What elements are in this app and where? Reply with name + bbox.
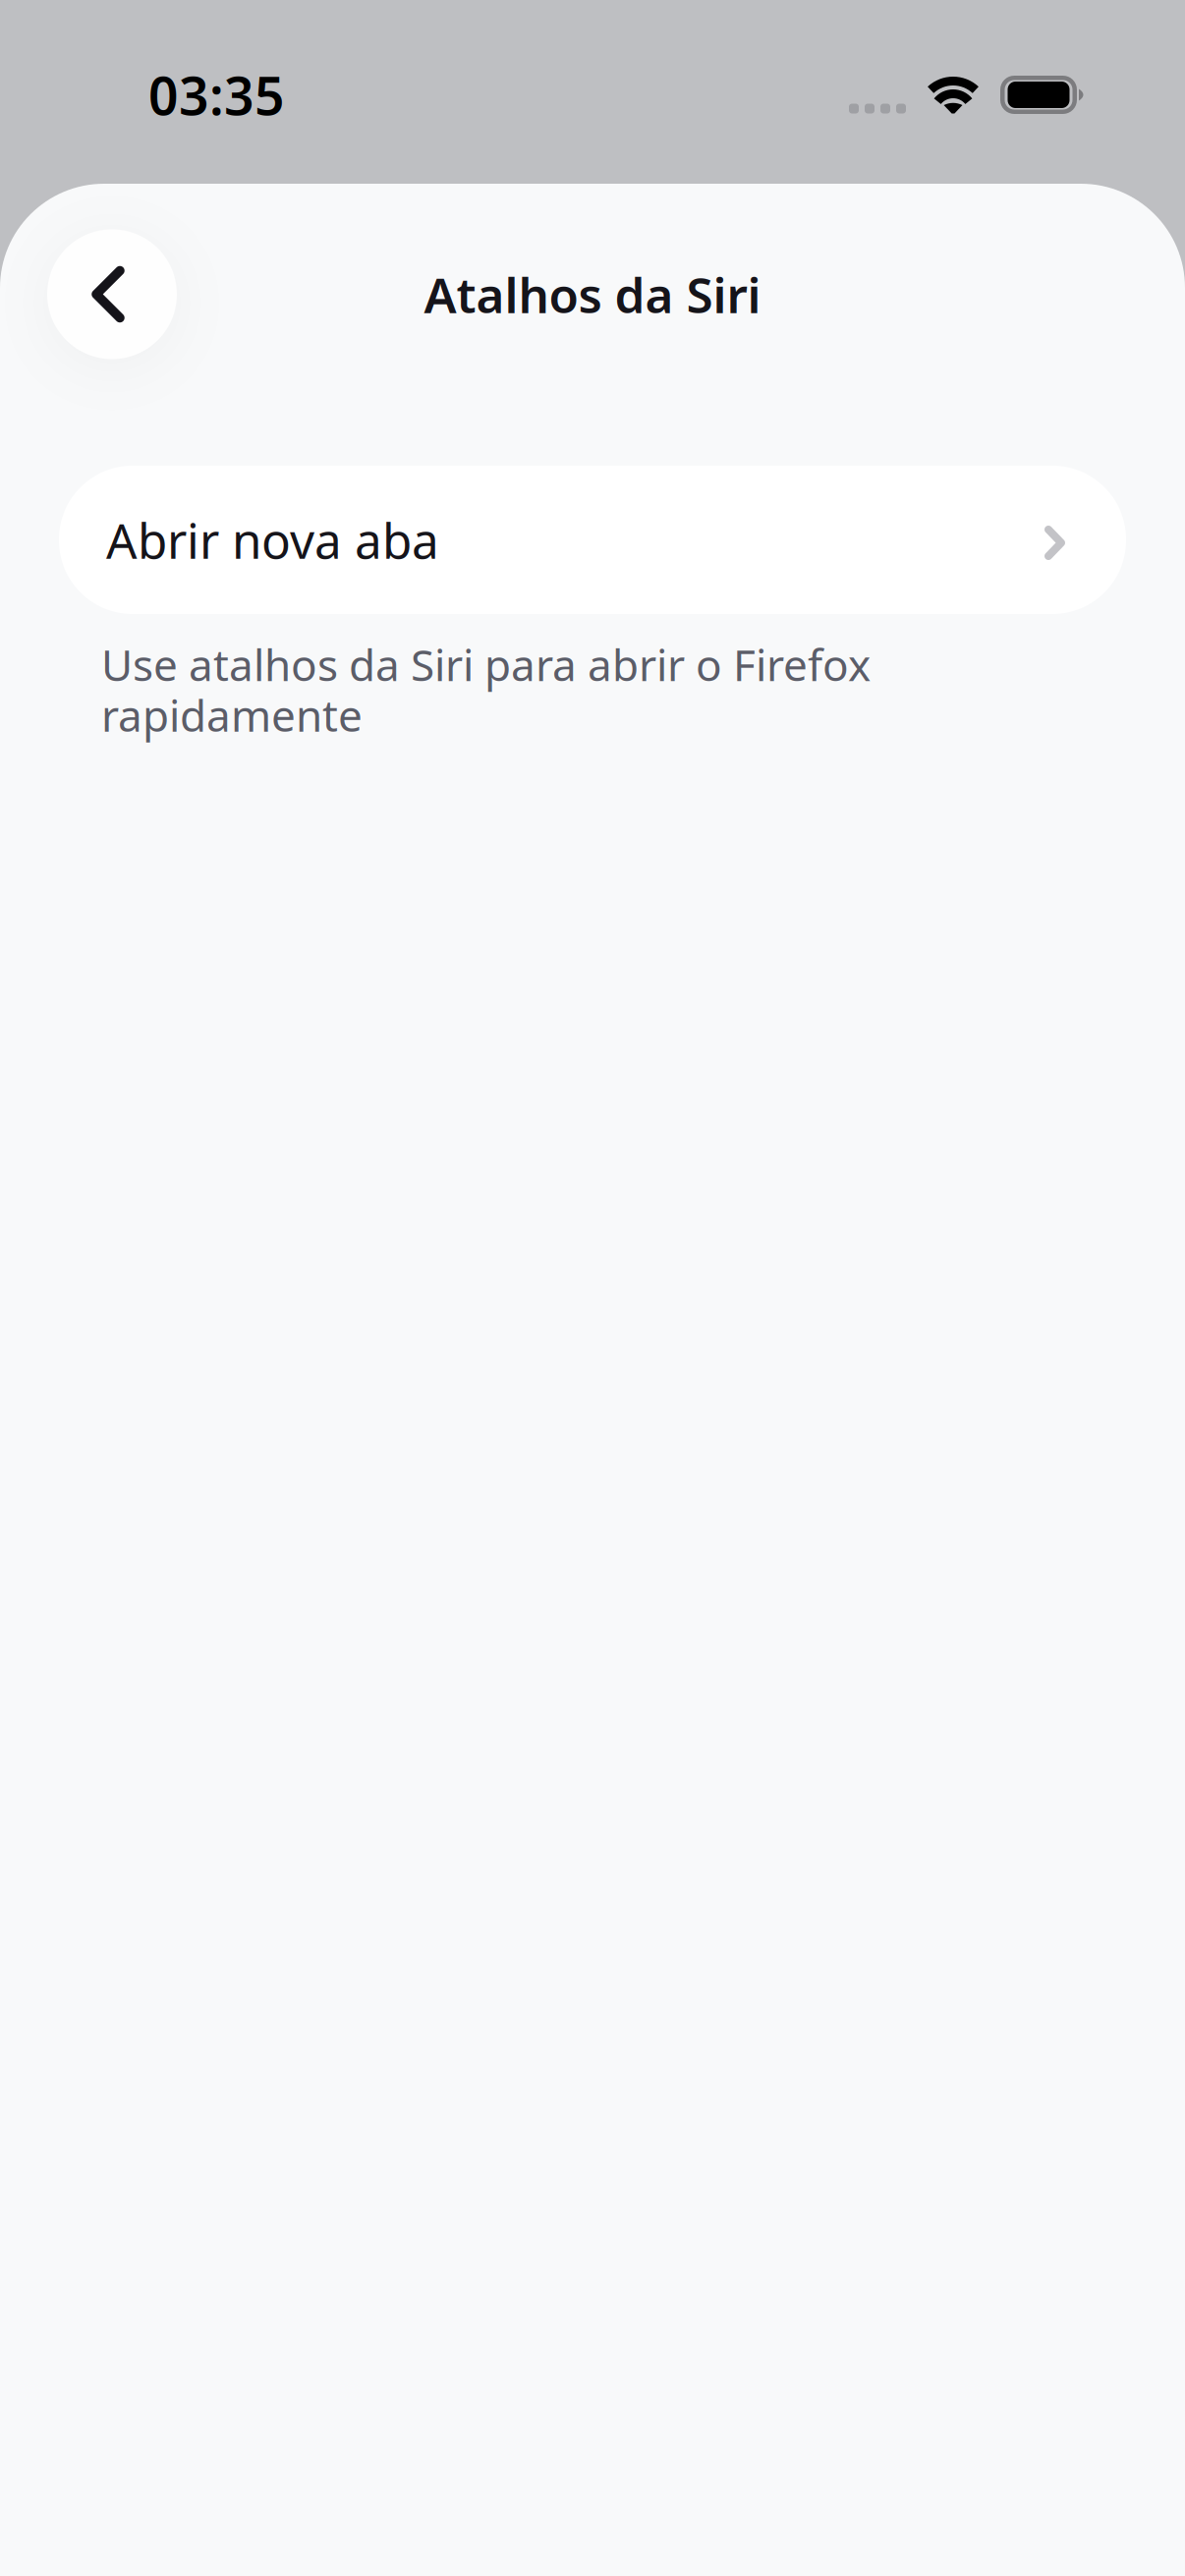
button[interactable]: Voltar xyxy=(47,229,177,359)
staticText: Abrir nova aba xyxy=(106,508,439,572)
staticText: Use atalhos da Siri para abrir o Firefox… xyxy=(101,636,871,744)
button[interactable]: Abrir nova aba xyxy=(59,466,1126,614)
staticText: 03:35 xyxy=(148,60,285,130)
staticText: Atalhos da Siri xyxy=(424,262,761,326)
